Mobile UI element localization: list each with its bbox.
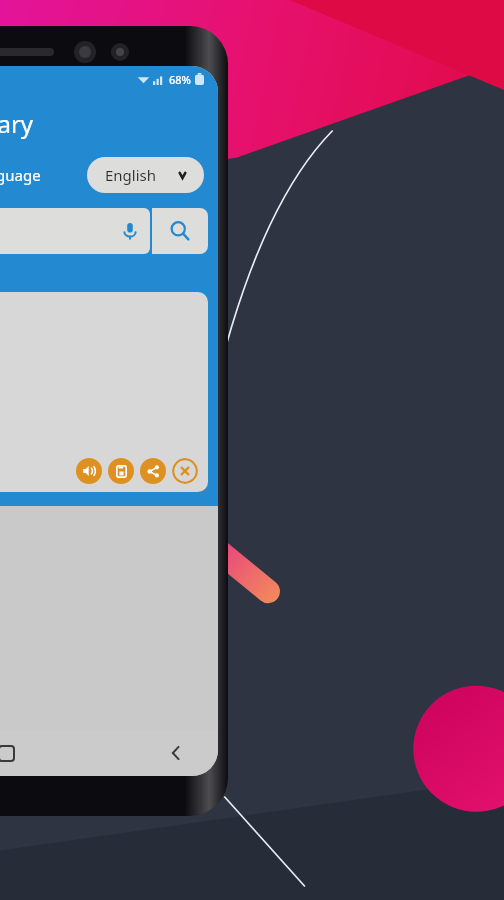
button[interactable]: Close	[172, 458, 198, 484]
button[interactable]: Back	[133, 730, 218, 776]
other: Voice search	[110, 211, 150, 251]
button[interactable]: English	[87, 157, 204, 193]
staticText: English	[105, 165, 157, 185]
button[interactable]: Share	[140, 458, 166, 484]
staticText: Dictionary	[0, 107, 34, 140]
button[interactable]: Search	[152, 208, 208, 254]
staticText: Choose language	[0, 165, 41, 185]
button[interactable]: Voice search	[0, 208, 150, 254]
button[interactable]: Speak	[76, 458, 102, 484]
button[interactable]: Recents	[0, 730, 48, 776]
button[interactable]: Copy	[108, 458, 134, 484]
staticText: 68%	[169, 72, 191, 87]
